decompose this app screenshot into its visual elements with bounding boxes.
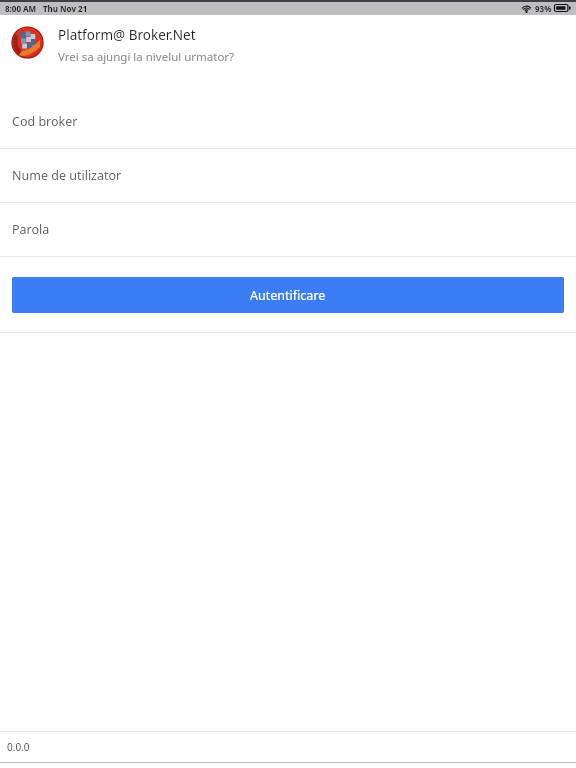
button[interactable]: Cod broker — [0, 94, 576, 148]
staticText: 0.0.0 — [7, 740, 30, 754]
other: Battery 93 percent — [554, 4, 571, 12]
other: Platform Broker.Net logo — [11, 26, 44, 59]
button[interactable]: Autentificare — [12, 277, 564, 313]
staticText: Platform@ Broker.Net — [58, 26, 196, 44]
staticText: Nume de utilizator — [12, 167, 122, 184]
staticText: 8:00 AM — [5, 3, 37, 14]
button[interactable]: Nume de utilizator — [0, 149, 576, 202]
staticText: Cod broker — [12, 113, 78, 130]
staticText: 93% — [535, 3, 552, 14]
button[interactable]: Parola — [0, 203, 576, 256]
staticText: Autentificare — [250, 287, 326, 304]
staticText: Vrei sa ajungi la nivelul urmator? — [58, 49, 235, 65]
staticText: Thu Nov 21 — [43, 3, 88, 14]
staticText: Parola — [12, 221, 50, 238]
other: Wi-Fi — [521, 4, 532, 13]
